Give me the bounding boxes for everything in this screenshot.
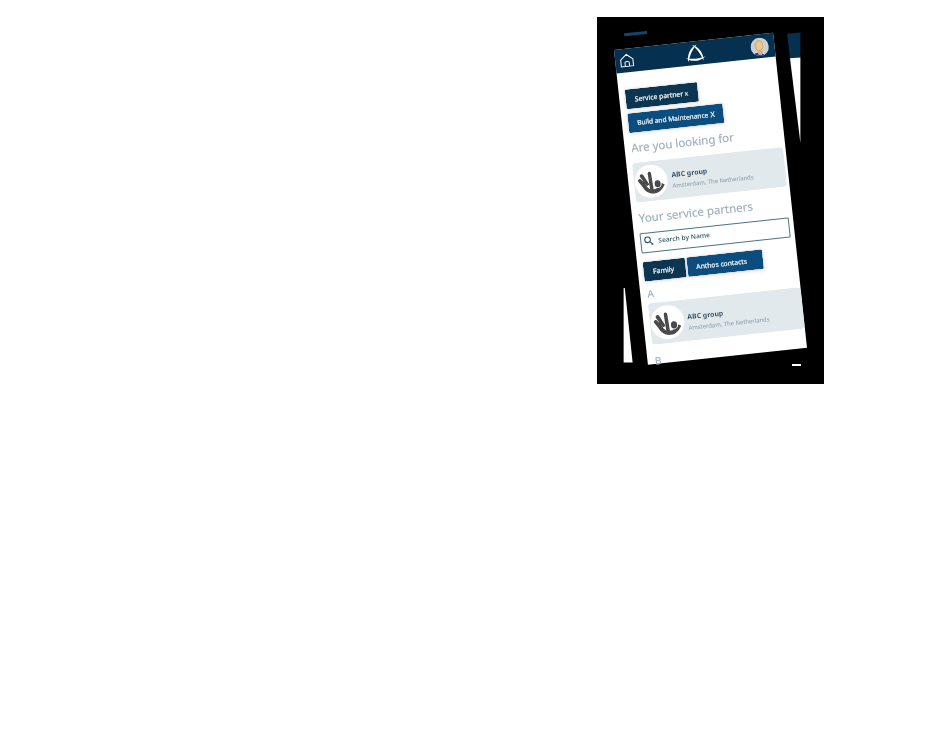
button[interactable]: Anthos contacts [686,249,764,277]
staticText: Search by Name [658,230,710,245]
staticText: B [654,353,662,368]
staticText: x [684,89,688,97]
staticText: Your service partners [638,198,754,226]
staticText: Anthos contacts [696,256,747,271]
button[interactable]: ABC group [632,147,787,203]
button[interactable]: Home [619,53,634,68]
staticText: Amsterdam, The Netherlands [688,315,770,332]
staticText: Build and Maintenance [637,110,709,127]
button[interactable]: ABC group [648,287,805,345]
staticText: Family [652,264,675,276]
staticText: Service partner [634,89,684,103]
staticText: ABC group [687,308,724,321]
button[interactable]: Profile [750,37,770,57]
staticText: X [710,109,716,119]
button[interactable]: Search by Name [639,217,791,254]
button[interactable]: Build and Maintenance [627,103,724,133]
button[interactable]: Service partner [625,82,699,109]
button[interactable]: Family [643,258,687,282]
staticText: Are you looking for [630,129,735,156]
staticText: Amsterdam, The Netherlands [672,173,754,189]
staticText: A [647,286,655,301]
staticText: ABC group [671,166,708,179]
